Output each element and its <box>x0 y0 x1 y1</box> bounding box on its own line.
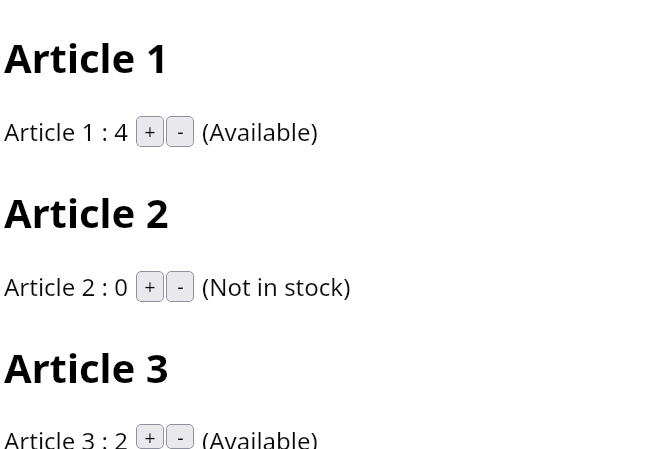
staticText: Article 2 <box>4 185 169 239</box>
staticText: Article 1 : 4 <box>4 115 128 148</box>
staticText: (Not in stock) <box>202 270 351 303</box>
button[interactable]: Decrease Article 3 quantity <box>166 424 194 449</box>
staticText: Article 3 <box>4 340 169 394</box>
staticText: + <box>144 118 156 145</box>
staticText: Article 3 : 2 <box>4 424 128 449</box>
button[interactable]: Increase Article 1 quantity <box>136 116 164 147</box>
staticText: (Available) <box>202 115 318 148</box>
staticText: + <box>144 424 156 449</box>
button[interactable]: Increase Article 3 quantity <box>136 424 164 449</box>
staticText: (Available) <box>202 424 318 449</box>
button[interactable]: Decrease Article 1 quantity <box>166 116 194 147</box>
button[interactable]: Decrease Article 2 quantity <box>166 271 194 302</box>
staticText: - <box>177 273 184 300</box>
staticText: + <box>144 273 156 300</box>
staticText: - <box>177 118 184 145</box>
staticText: - <box>177 424 184 449</box>
button[interactable]: Increase Article 2 quantity <box>136 271 164 302</box>
staticText: Article 1 <box>4 30 169 84</box>
staticText: Article 2 : 0 <box>4 270 128 303</box>
